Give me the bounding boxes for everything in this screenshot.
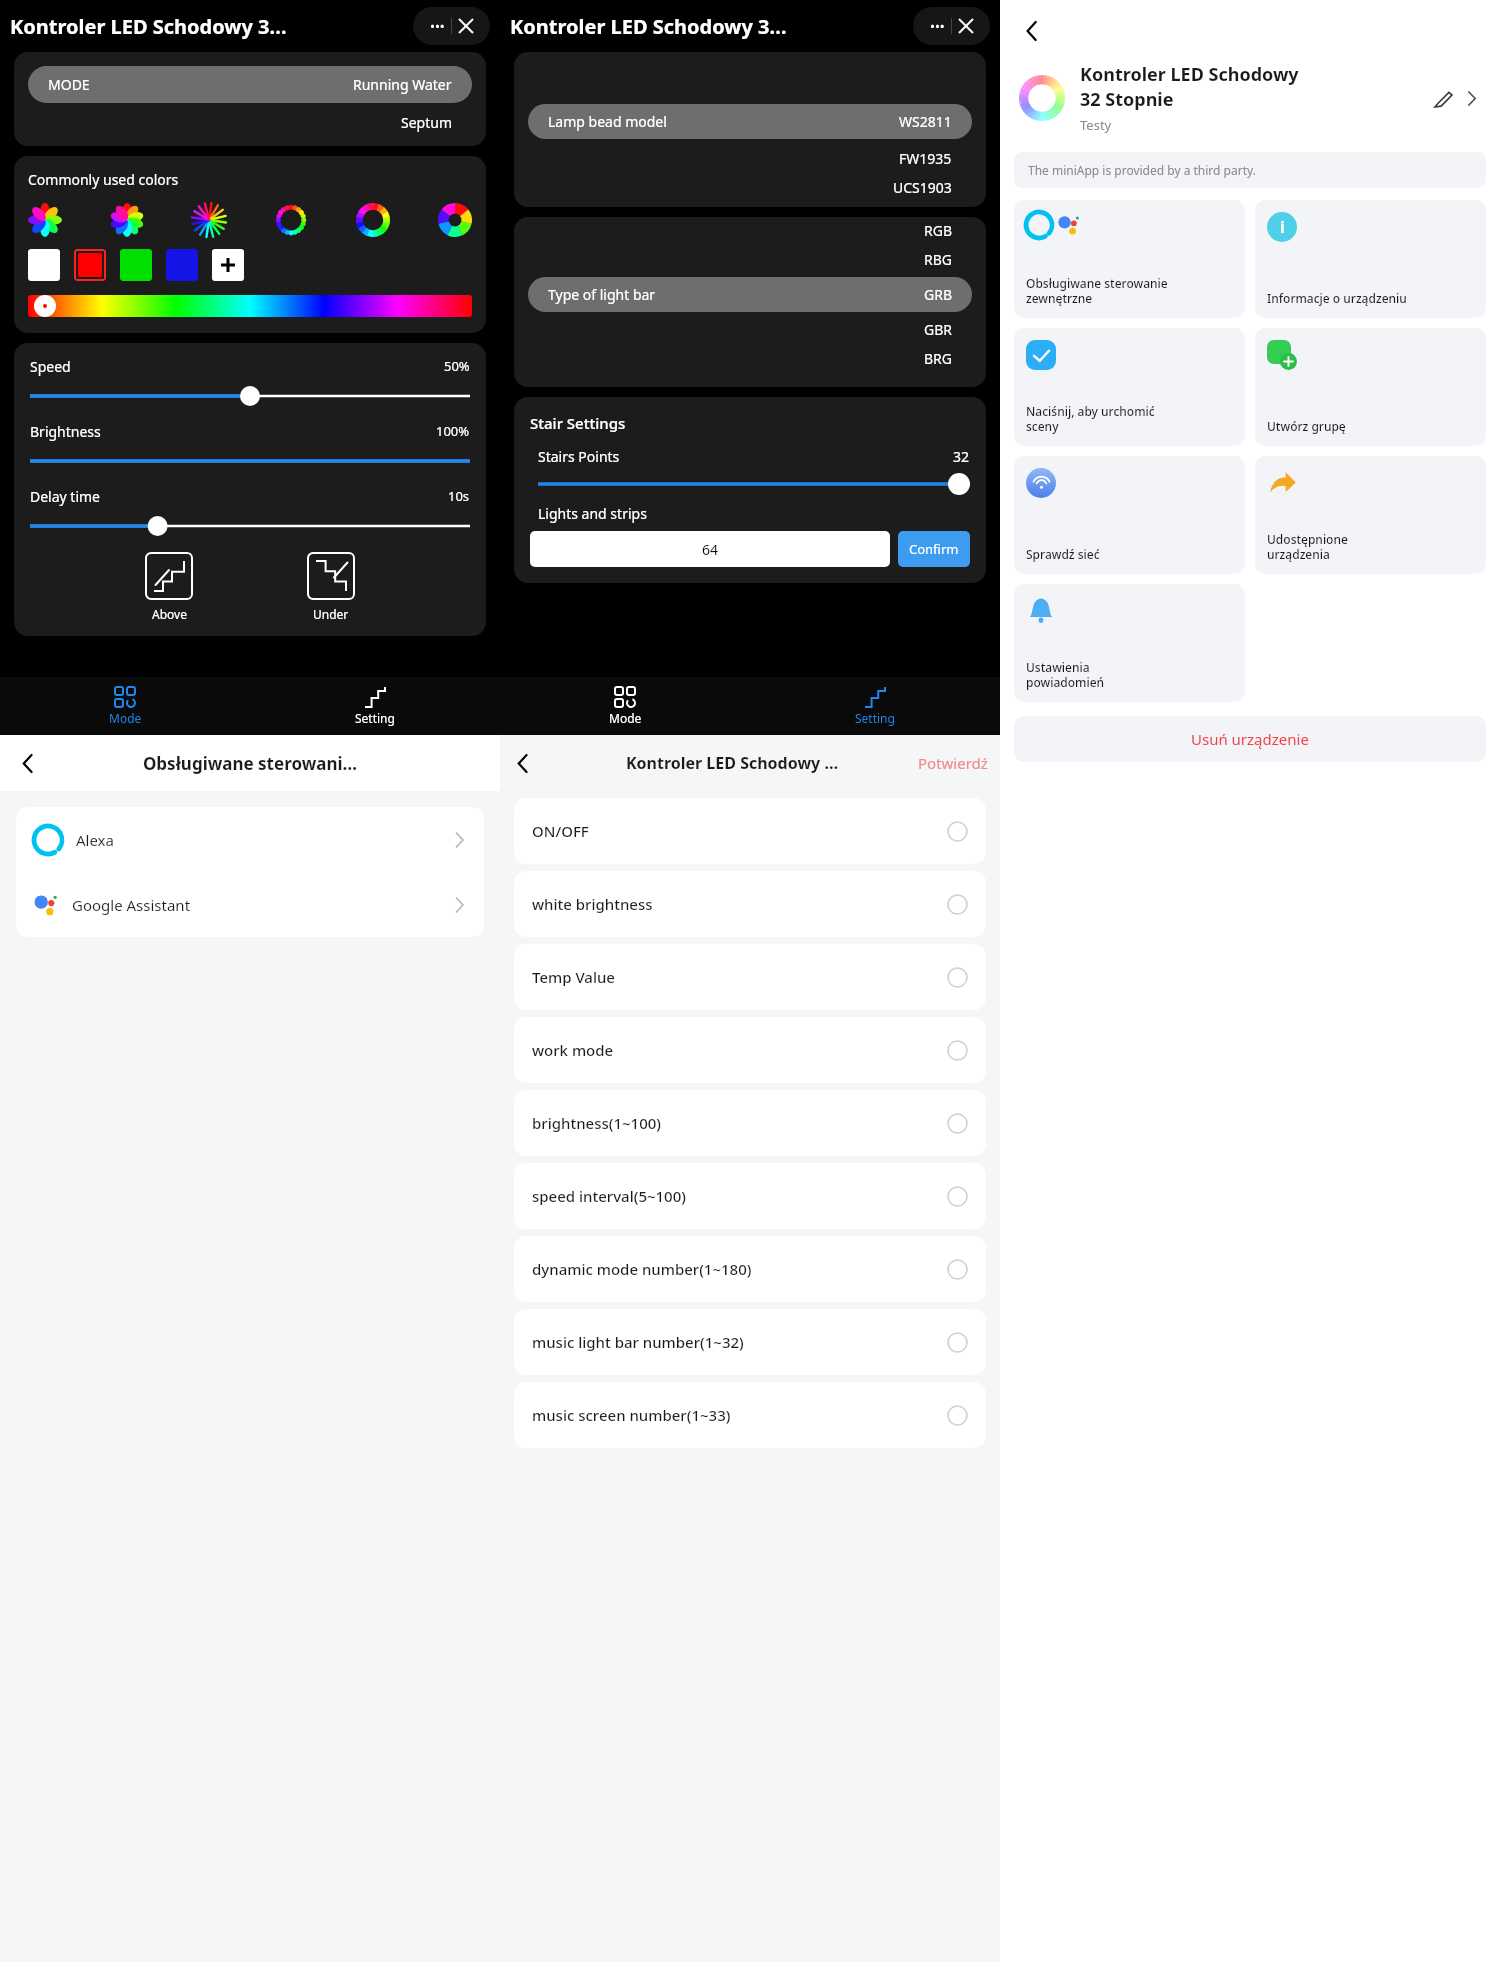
button[interactable] xyxy=(538,474,970,494)
staticText: Septum xyxy=(401,113,452,132)
staticText: Brightness xyxy=(30,422,436,441)
button[interactable] xyxy=(30,386,470,406)
button[interactable]: Mode xyxy=(0,677,250,735)
staticText: Naciśnij, aby urchomić sceny xyxy=(1026,403,1155,434)
staticText: Usuń urządzenie xyxy=(1191,729,1309,749)
staticText: Setting xyxy=(355,710,395,726)
staticText: 64 xyxy=(702,540,719,559)
staticText: RBG xyxy=(924,250,952,269)
button[interactable]: Color preset xyxy=(274,203,308,237)
button[interactable]: Color swatch xyxy=(78,253,102,277)
button[interactable]: Add color xyxy=(212,249,244,281)
button[interactable]: dynamic mode number(1~180) xyxy=(514,1236,986,1302)
button[interactable]: i xyxy=(1255,200,1486,318)
button[interactable]: brightness(1~100) xyxy=(514,1090,986,1156)
button[interactable]: Under xyxy=(307,552,355,622)
button[interactable]: Naciśnij, aby urchomić sceny xyxy=(1014,328,1245,446)
button[interactable] xyxy=(30,516,470,536)
button[interactable]: GBR xyxy=(548,320,952,339)
button[interactable]: Next xyxy=(1458,85,1484,111)
staticText: Obsługiwane sterowani… xyxy=(56,752,444,775)
staticText: Commonly used colors xyxy=(28,170,179,189)
button[interactable] xyxy=(30,451,470,471)
button[interactable]: Color preset xyxy=(110,203,144,237)
button[interactable]: Type of light bar xyxy=(548,285,952,304)
button[interactable]: ON/OFF xyxy=(514,798,986,864)
staticText: Google Assistant xyxy=(72,895,452,915)
button[interactable]: MODE xyxy=(48,75,452,94)
button[interactable]: Back xyxy=(500,735,546,791)
button[interactable]: Back xyxy=(1016,14,1050,48)
staticText: brightness(1~100) xyxy=(532,1113,947,1133)
button[interactable]: white brightness xyxy=(514,871,986,937)
staticText: Setting xyxy=(855,710,895,726)
staticText: Kontroler LED Schodowy 3… xyxy=(510,13,913,40)
button[interactable]: Septum xyxy=(48,113,452,132)
button[interactable]: Sprawdź sieć xyxy=(1014,456,1245,574)
staticText: 50% xyxy=(444,357,470,375)
staticText: Stair Settings xyxy=(530,413,626,433)
button[interactable]: Close xyxy=(452,12,480,40)
staticText: Utwórz grupę xyxy=(1267,418,1346,434)
button[interactable]: Above xyxy=(145,552,193,622)
staticText: BRG xyxy=(924,349,952,368)
button[interactable]: Ustawienia powiadomień xyxy=(1014,584,1245,702)
staticText: white brightness xyxy=(532,894,947,914)
staticText: Kontroler LED Schodowy xyxy=(1080,62,1299,87)
staticText: music light bar number(1~32) xyxy=(532,1332,947,1352)
staticText: Testy xyxy=(1080,116,1112,134)
button[interactable]: Color preset xyxy=(438,203,472,237)
staticText: Confirm xyxy=(909,540,959,558)
button[interactable]: speed interval(5~100) xyxy=(514,1163,986,1229)
staticText: 32 xyxy=(953,447,970,466)
button[interactable]: Utwórz grupę xyxy=(1255,328,1486,446)
button[interactable]: Color swatch xyxy=(28,249,60,281)
staticText: speed interval(5~100) xyxy=(532,1186,947,1206)
button[interactable]: Alexa xyxy=(16,807,484,872)
button[interactable]: music screen number(1~33) xyxy=(514,1382,986,1448)
staticText: Informacje o urządzeniu xyxy=(1267,290,1407,306)
button[interactable]: Potwierdź xyxy=(918,753,988,773)
button[interactable]: FW1935 xyxy=(548,149,952,168)
staticText: Above xyxy=(152,606,187,622)
button[interactable]: BRG xyxy=(548,349,952,368)
button[interactable]: Hue picker xyxy=(34,295,56,317)
staticText: Kontroler LED Schodowy … xyxy=(546,752,918,774)
button[interactable]: Color preset xyxy=(356,203,390,237)
staticText: ••• xyxy=(930,17,945,35)
button[interactable]: Usuń urządzenie xyxy=(1014,716,1486,762)
button[interactable]: Setting xyxy=(750,677,1000,735)
staticText: i xyxy=(1280,216,1285,238)
button[interactable]: Obsługiwane sterowanie zewnętrzne xyxy=(1014,200,1245,318)
button[interactable]: Temp Value xyxy=(514,944,986,1010)
button[interactable]: Color preset xyxy=(192,203,226,237)
button[interactable]: 64 xyxy=(530,531,890,567)
staticText: Sprawdź sieć xyxy=(1026,546,1100,562)
button[interactable]: music light bar number(1~32) xyxy=(514,1309,986,1375)
button[interactable]: Color swatch xyxy=(120,249,152,281)
button[interactable]: Color swatch xyxy=(166,249,198,281)
button[interactable]: work mode xyxy=(514,1017,986,1083)
button[interactable]: RBG xyxy=(548,250,952,269)
button[interactable]: Color preset xyxy=(28,203,62,237)
button[interactable]: Confirm xyxy=(898,531,970,567)
button[interactable]: RGB xyxy=(548,221,952,240)
button[interactable]: Google Assistant xyxy=(16,872,484,937)
staticText: Lamp bead model xyxy=(548,112,899,131)
staticText: Delay time xyxy=(30,487,448,506)
staticText: Mode xyxy=(609,710,642,726)
button[interactable]: Back xyxy=(0,735,56,791)
button[interactable]: Close xyxy=(952,12,980,40)
staticText: MODE xyxy=(48,75,353,94)
button[interactable]: Udostępnione urządzenia xyxy=(1255,456,1486,574)
button[interactable]: Setting xyxy=(250,677,500,735)
staticText: 10s xyxy=(448,487,470,505)
button[interactable]: Mode xyxy=(500,677,750,735)
button[interactable]: More options xyxy=(923,12,951,40)
button[interactable]: More options xyxy=(423,12,451,40)
button[interactable]: Lamp bead model xyxy=(548,112,952,131)
button[interactable]: Edit name xyxy=(1428,83,1458,113)
staticText: music screen number(1~33) xyxy=(532,1405,947,1425)
staticText: ON/OFF xyxy=(532,821,947,841)
button[interactable]: UCS1903 xyxy=(548,178,952,197)
